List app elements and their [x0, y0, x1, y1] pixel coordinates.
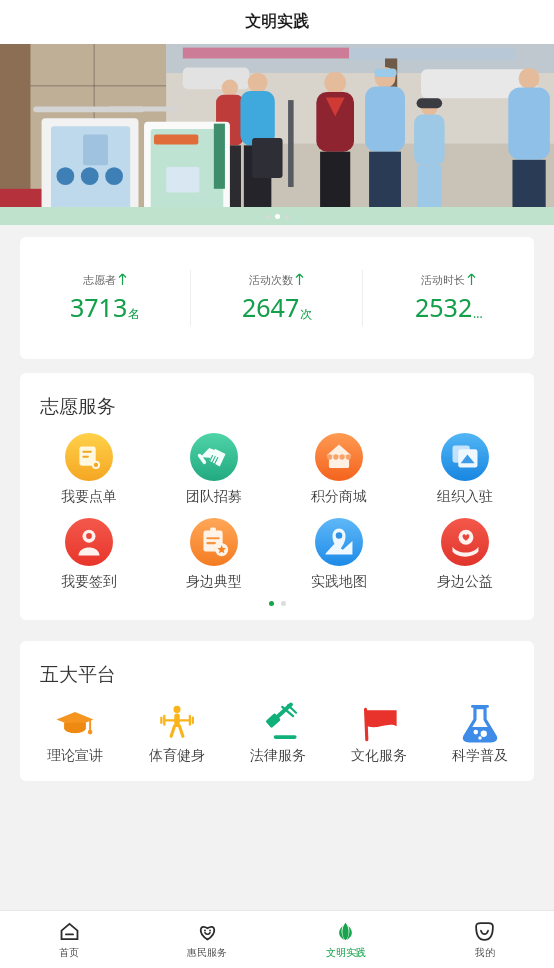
button[interactable]: 活动次数 — [191, 265, 362, 332]
staticText: 科学普及 — [452, 747, 508, 765]
button[interactable]: 我要签到 — [26, 518, 151, 591]
button[interactable]: 我的 — [415, 911, 554, 968]
staticText: 文化服务 — [351, 747, 407, 765]
staticText: 活动时长 — [421, 273, 465, 287]
button[interactable]: 活动时长 — [363, 265, 534, 332]
staticText: 首页 — [59, 946, 79, 959]
button[interactable]: 科学普及 — [429, 701, 530, 765]
button[interactable]: 身边典型 — [151, 518, 276, 591]
staticText: 惠民服务 — [187, 946, 227, 959]
staticText: 名 — [128, 306, 140, 321]
staticText: 志愿服务 — [40, 395, 116, 419]
staticText: 积分商城 — [311, 488, 367, 506]
staticText: 组织入驻 — [437, 488, 493, 506]
button[interactable]: 我要点单 — [26, 433, 151, 506]
staticText: 2647 — [242, 290, 300, 324]
button[interactable]: 惠民服务 — [138, 911, 276, 968]
button[interactable]: 文明实践 — [276, 911, 415, 968]
button[interactable]: 积分商城 — [276, 433, 402, 506]
staticText: 团队招募 — [186, 488, 242, 506]
button[interactable]: 首页 — [0, 911, 138, 968]
button[interactable]: 法律服务 — [227, 701, 328, 765]
button[interactable]: 志愿者 — [20, 265, 190, 332]
button[interactable]: 文化服务 — [328, 701, 429, 765]
staticText: 身边公益 — [437, 573, 493, 591]
staticText: 3713 — [70, 290, 128, 324]
staticText: 体育健身 — [149, 747, 205, 765]
staticText: 文明实践 — [245, 12, 309, 32]
staticText: 实践地图 — [311, 573, 367, 591]
staticText: 五大平台 — [40, 663, 116, 687]
staticText: 志愿者 — [83, 273, 116, 287]
button[interactable]: 理论宣讲 — [24, 701, 126, 765]
staticText: 理论宣讲 — [47, 747, 103, 765]
staticText: 2532 — [415, 290, 473, 324]
staticText: 法律服务 — [250, 747, 306, 765]
staticText: 活动次数 — [249, 273, 293, 287]
button[interactable]: 体育健身 — [126, 701, 227, 765]
staticText: 我的 — [475, 946, 495, 959]
staticText: 我要点单 — [61, 488, 117, 506]
staticText: 次 — [300, 306, 312, 321]
button[interactable]: 团队招募 — [151, 433, 276, 506]
staticText: 文明实践 — [326, 946, 366, 959]
staticText: ... — [473, 305, 483, 321]
button[interactable]: 组织入驻 — [402, 433, 528, 506]
staticText: 身边典型 — [186, 573, 242, 591]
button[interactable]: 身边公益 — [402, 518, 528, 591]
staticText: 我要签到 — [61, 573, 117, 591]
button[interactable]: 实践地图 — [276, 518, 402, 591]
